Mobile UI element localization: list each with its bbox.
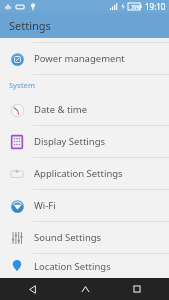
button[interactable]: Wi-Fi <box>0 190 169 221</box>
button[interactable]: Application Settings <box>0 158 169 189</box>
staticText: Application Settings <box>34 167 123 180</box>
staticText: Sound Settings <box>34 231 102 244</box>
staticText: 19:10 <box>145 1 166 12</box>
staticText: System <box>9 80 36 90</box>
button[interactable]: Home <box>65 278 105 300</box>
button[interactable]: Recents <box>117 278 157 300</box>
staticText: Wi-Fi <box>34 199 56 212</box>
button[interactable]: Back <box>12 278 52 300</box>
button[interactable]: Display Settings <box>0 126 169 157</box>
button[interactable]: Location Settings <box>0 254 169 278</box>
staticText: 70% <box>131 4 140 10</box>
button[interactable]: Sound Settings <box>0 222 169 253</box>
staticText: Date & time <box>34 103 88 116</box>
button[interactable]: Date & time <box>0 94 169 125</box>
staticText: Display Settings <box>34 135 106 148</box>
button[interactable]: Power management <box>0 43 169 74</box>
staticText: Settings <box>9 18 51 33</box>
staticText: Location Settings <box>34 260 111 273</box>
staticText: Power management <box>34 52 125 65</box>
